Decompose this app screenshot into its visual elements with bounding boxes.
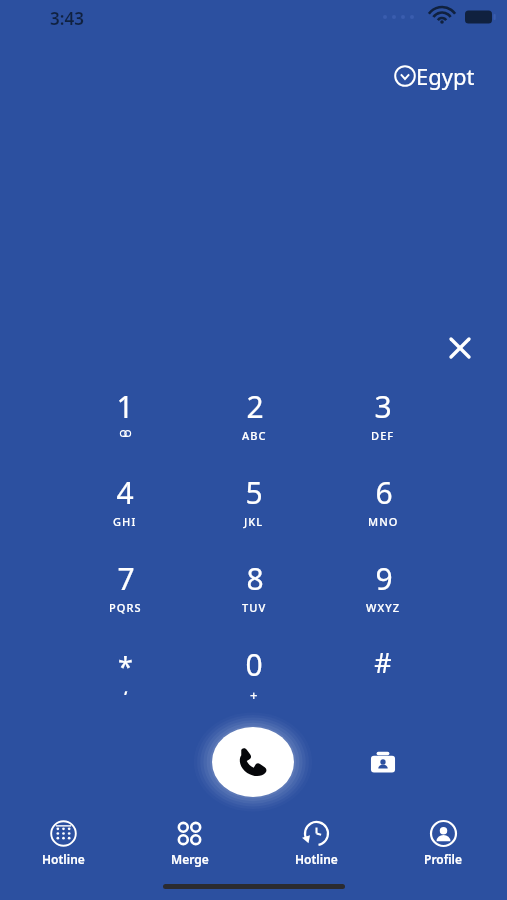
staticText: 7 [117,558,135,599]
staticText: 4 [116,472,134,513]
staticText: Egypt [416,61,475,91]
staticText: 0 [245,644,263,685]
staticText: Hotline [42,851,85,867]
staticText: + [250,686,258,704]
staticText: GHI [113,514,137,529]
button[interactable]: 5 [211,472,297,534]
button[interactable]: 6 [340,472,426,534]
staticText: ABC [242,428,267,443]
staticText: TUV [242,600,267,615]
button[interactable]: 9 [340,558,426,620]
button[interactable]: 7 [82,558,168,620]
button[interactable]: Clear [436,324,484,372]
button[interactable]: Hotline [0,812,126,890]
staticText: 3 [374,386,392,427]
button[interactable]: 4 [82,472,168,534]
staticText: 6 [375,472,393,513]
button[interactable]: Egypt [392,58,477,94]
staticText: # [374,644,392,681]
staticText: , [124,678,128,697]
button[interactable]: # [340,644,426,706]
staticText: Profile [424,851,463,867]
button[interactable]: 2 [211,386,297,448]
staticText: MNO [368,514,399,529]
button[interactable]: 3 [340,386,426,448]
staticText: JKL [244,514,264,529]
button[interactable]: Call [206,721,300,803]
staticText: 2 [246,386,264,427]
button[interactable]: Merge [126,812,253,890]
staticText: PQRS [109,600,142,615]
button[interactable]: 1 [82,386,168,448]
staticText: 3:43 [50,7,84,30]
button[interactable]: Profile [380,812,507,890]
staticText: DEF [371,428,395,443]
staticText: WXYZ [366,600,401,615]
staticText: Hotline [295,851,338,867]
button[interactable]: 8 [211,558,297,620]
button[interactable]: 0 [211,644,297,706]
staticText: Merge [171,851,209,867]
staticText: * [118,648,133,685]
staticText: 9 [375,558,393,599]
button[interactable]: Hotline [253,812,380,890]
staticText: 5 [245,472,263,513]
staticText: 1 [116,386,134,427]
button[interactable]: Contacts [360,740,406,786]
staticText: 8 [246,558,264,599]
button[interactable]: * [82,644,168,706]
